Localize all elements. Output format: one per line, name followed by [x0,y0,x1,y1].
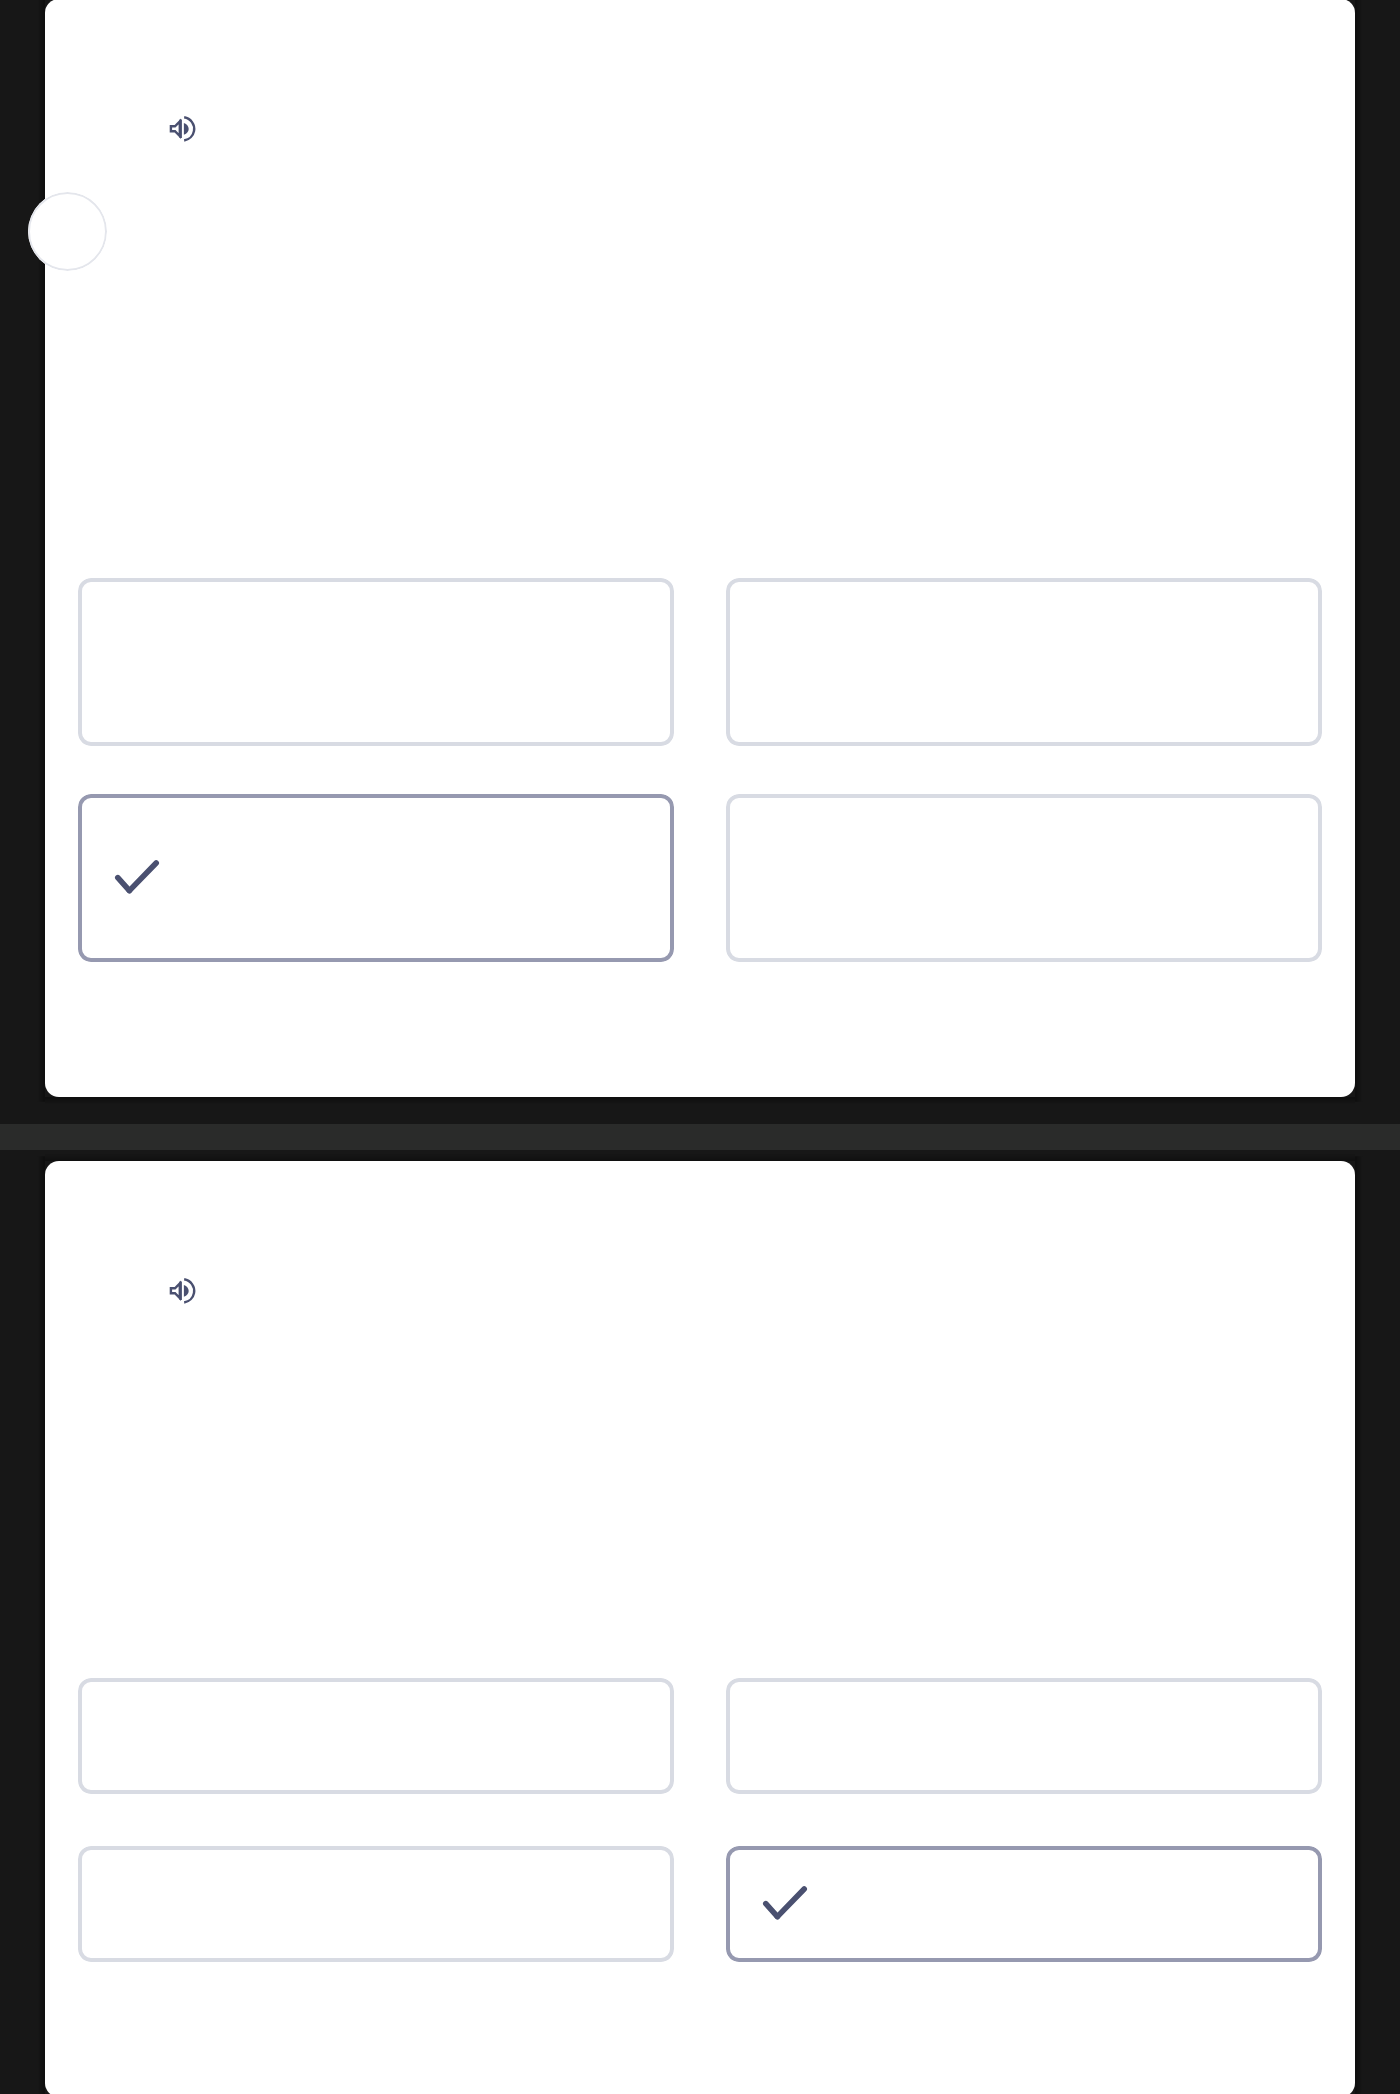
button[interactable] [78,1678,674,1794]
button[interactable] [78,1846,674,1962]
button[interactable]: Speaker avatar [28,192,107,271]
button[interactable] [726,578,1322,746]
button[interactable]: Play audio [169,1279,195,1305]
button[interactable] [726,794,1322,962]
button[interactable]: Play audio [169,117,195,143]
button[interactable] [726,1678,1322,1794]
button[interactable] [78,794,674,962]
button[interactable] [726,1846,1322,1962]
button[interactable] [78,578,674,746]
